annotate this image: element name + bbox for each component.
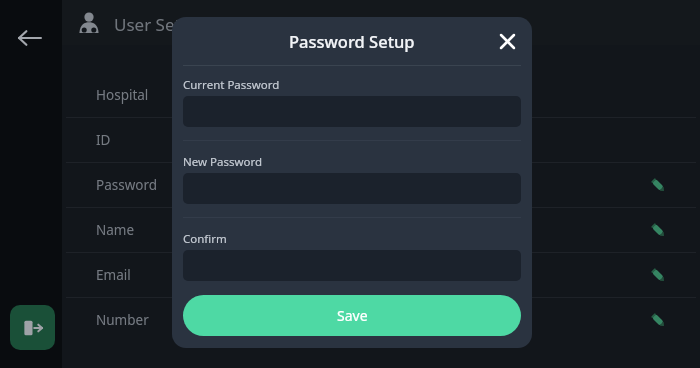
staticText: User Settings [114,13,221,36]
staticText: Password [96,176,158,194]
staticText: Email [96,266,131,284]
button[interactable]: Email [62,252,700,297]
button[interactable]: ID [62,117,700,162]
staticText: Save [337,306,368,325]
button[interactable]: Edit [645,172,671,198]
button[interactable]: Hospital [62,72,700,117]
button[interactable]: Number [62,297,700,342]
staticText: Current Password [183,77,280,93]
staticText: ID [96,131,111,149]
button[interactable]: Save [183,295,521,336]
button[interactable]: Logout [10,305,55,350]
staticText: Number [96,311,149,329]
button[interactable]: Edit [645,262,671,288]
button[interactable]: Password [62,162,700,207]
button[interactable]: Back [8,16,52,60]
button[interactable]: Edit [645,307,671,333]
staticText: Name [96,221,135,239]
button[interactable]: Close [490,24,524,58]
staticText: Confirm [183,231,227,247]
staticText: New Password [183,154,263,170]
button[interactable]: Edit [645,217,671,243]
staticText: Hospital [96,86,149,104]
staticText: Password Setup [289,30,415,52]
button[interactable]: Name [62,207,700,252]
